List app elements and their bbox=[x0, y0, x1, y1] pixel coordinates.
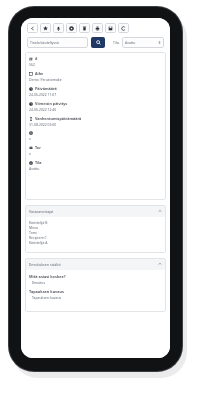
staticText: Tapauksen kuvaus bbox=[32, 295, 62, 300]
staticText: Vanhentumispäivämäärä bbox=[35, 116, 82, 121]
staticText: Päivämäärä bbox=[35, 86, 57, 91]
staticText: 562 bbox=[29, 62, 35, 67]
button[interactable]: refresh bbox=[118, 23, 129, 33]
staticText: Tila: bbox=[113, 40, 120, 45]
staticText: Ilmoitus bbox=[32, 280, 46, 285]
staticText: Avattu bbox=[29, 166, 40, 171]
staticText: Demo: Perustomake bbox=[29, 77, 62, 82]
button[interactable]: gear bbox=[66, 23, 77, 33]
staticText: Tila bbox=[35, 160, 42, 165]
button[interactable]: Vastaanottajat bbox=[25, 205, 166, 217]
staticText: Vastaanottajat bbox=[29, 209, 54, 214]
button[interactable]: star bbox=[40, 23, 51, 33]
button[interactable]: Ilmoituksen sisältö bbox=[25, 258, 166, 270]
button[interactable]: trash bbox=[79, 23, 90, 33]
staticText: x bbox=[29, 136, 31, 141]
button[interactable]: back bbox=[27, 23, 38, 33]
button[interactable]: save bbox=[105, 23, 116, 33]
staticText: Ilmoituksen sisältö bbox=[29, 262, 61, 267]
button[interactable]: Search bbox=[91, 37, 105, 48]
staticText: Tinala käsiteltyvvä bbox=[30, 40, 59, 45]
staticText: Mitä asiasi koskee? bbox=[29, 274, 66, 279]
staticText: Avattu bbox=[125, 40, 136, 45]
staticText: 31-08-2022 03:00 bbox=[29, 122, 57, 127]
button[interactable]: Avattu bbox=[122, 37, 164, 48]
button[interactable]: Tinala käsiteltyvvä bbox=[27, 37, 88, 48]
staticText: Tomi bbox=[29, 230, 37, 235]
staticText: Aihe bbox=[35, 71, 44, 76]
staticText: Käsittelijä A bbox=[29, 240, 48, 245]
staticText: Recipient C bbox=[29, 235, 47, 240]
staticText: Tor bbox=[35, 145, 41, 150]
staticText: Käsittelijä B bbox=[29, 220, 48, 225]
staticText: 24-06-2022 12:46 bbox=[29, 107, 57, 112]
staticText: # bbox=[35, 56, 38, 61]
staticText: Tapauksen kuvaus bbox=[29, 289, 64, 294]
staticText: Viimeisin päivitys bbox=[35, 101, 68, 106]
staticText: 24-06-2022 11:07 bbox=[29, 92, 57, 97]
button[interactable]: bell bbox=[53, 23, 64, 33]
staticText: Mirva bbox=[29, 225, 38, 230]
staticText: x bbox=[29, 151, 31, 156]
button[interactable]: print bbox=[92, 23, 103, 33]
